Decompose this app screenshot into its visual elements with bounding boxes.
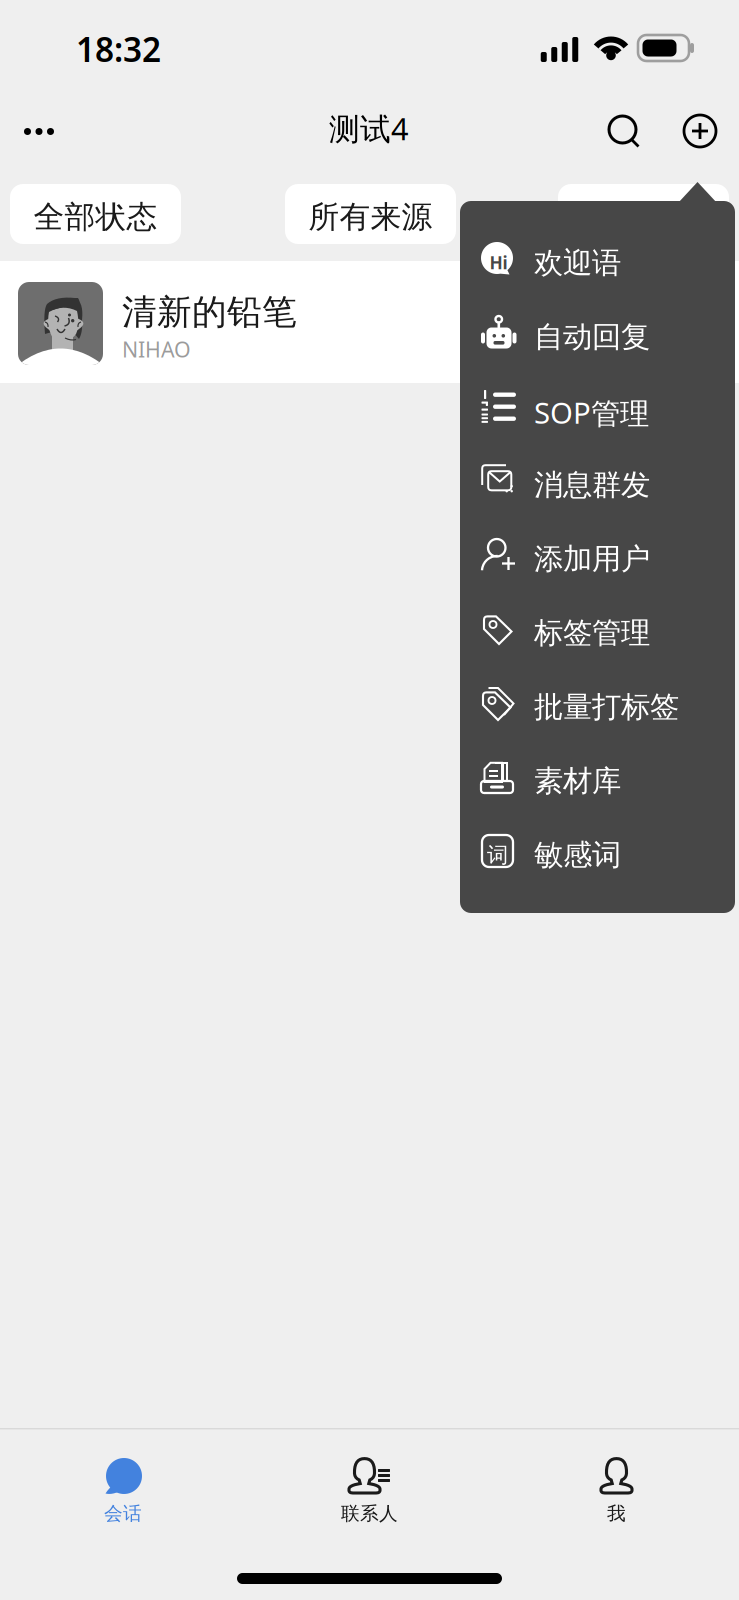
button[interactable]: 全部员工 xyxy=(558,184,729,244)
staticText: 我 xyxy=(607,1502,626,1525)
staticText: NIHAO xyxy=(122,335,191,363)
button[interactable]: 消息群发 xyxy=(460,447,735,521)
button[interactable]: Add xyxy=(668,94,730,158)
button[interactable]: 我 xyxy=(492,1421,739,1541)
button[interactable]: Hi xyxy=(460,225,735,299)
button[interactable]: 添加用户 xyxy=(460,521,735,595)
staticText: 欢迎语 xyxy=(534,245,621,281)
staticText: 自动回复 xyxy=(534,319,650,355)
staticText: SOP管理 xyxy=(534,393,649,432)
button[interactable]: 批量打标签 xyxy=(460,669,735,743)
button[interactable]: 素材库 xyxy=(460,743,735,817)
staticText: 添加用户 xyxy=(534,541,650,577)
button[interactable]: 标签管理 xyxy=(460,595,735,669)
button[interactable]: 所有来源 xyxy=(285,184,456,244)
staticText: 批量打标签 xyxy=(534,689,679,725)
button[interactable]: More xyxy=(0,94,80,158)
staticText: 测试4 xyxy=(329,108,409,149)
staticText: 消息群发 xyxy=(534,467,650,503)
button[interactable]: 联系人 xyxy=(246,1421,492,1541)
button[interactable]: 全部状态 xyxy=(10,184,181,244)
staticText: 全部状态 xyxy=(33,198,157,236)
button[interactable]: Search xyxy=(590,94,652,158)
staticText: 会话 xyxy=(104,1502,142,1525)
button[interactable]: SOP管理 xyxy=(460,373,735,447)
staticText: 全部员工 xyxy=(581,198,705,236)
staticText: 标签管理 xyxy=(534,615,650,651)
staticText: 敏感词 xyxy=(534,837,621,873)
button[interactable]: 会话 xyxy=(0,1421,246,1541)
staticText: 联系人 xyxy=(341,1502,398,1525)
staticText: 素材库 xyxy=(534,763,621,799)
button[interactable]: 自动回复 xyxy=(460,299,735,373)
staticText: 18:32 xyxy=(76,27,161,71)
button[interactable]: 词 xyxy=(460,817,735,891)
staticText: 清新的铅笔 xyxy=(122,291,297,334)
staticText: 词 xyxy=(487,842,508,868)
button[interactable]: 清新的铅笔 xyxy=(0,261,739,383)
staticText: 所有来源 xyxy=(308,198,432,236)
staticText: Hi xyxy=(489,251,507,274)
